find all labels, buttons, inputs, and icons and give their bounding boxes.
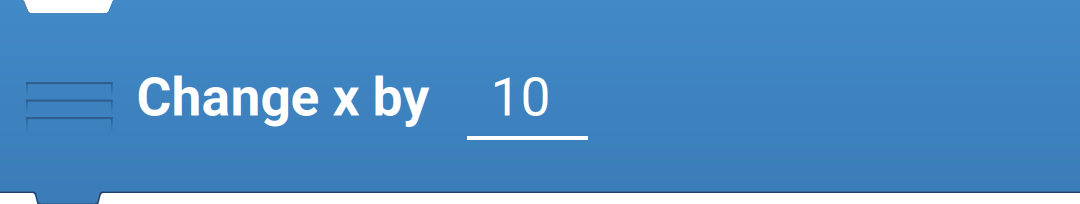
- staticText: 10: [490, 66, 550, 128]
- staticText: Change x by: [136, 66, 429, 128]
- button[interactable]: 10: [467, 66, 588, 140]
